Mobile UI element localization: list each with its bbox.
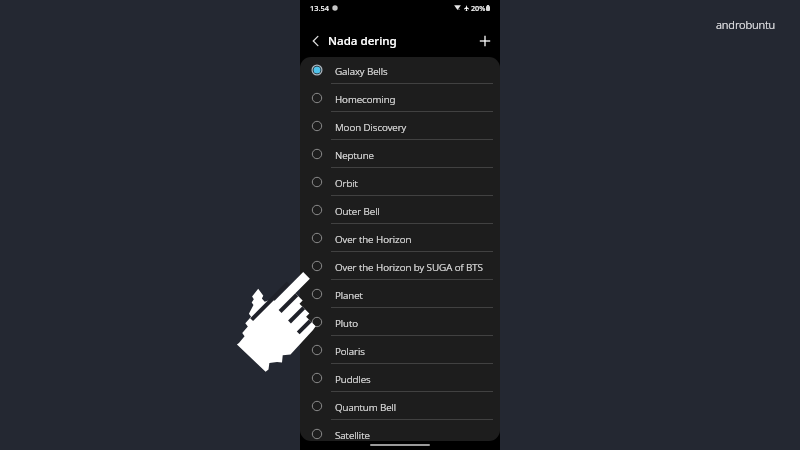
staticText: 20% <box>471 3 486 13</box>
button[interactable]: Galaxy Bells <box>300 57 500 84</box>
button[interactable]: Over the Horizon <box>300 224 500 252</box>
staticText: Polaris <box>335 344 365 357</box>
staticText: Pluto <box>335 316 359 329</box>
staticText: Quantum Bell <box>335 400 397 413</box>
staticText: Homecoming <box>335 92 396 105</box>
button[interactable]: Homecoming <box>300 84 500 112</box>
staticText: Nada dering <box>328 33 397 49</box>
button[interactable]: Back <box>307 33 323 49</box>
staticText: androbuntu <box>716 17 776 32</box>
staticText: Over the Horizon by SUGA of BTS <box>335 260 483 273</box>
staticText: Orbit <box>335 176 358 189</box>
button[interactable]: Outer Bell <box>300 196 500 224</box>
staticText: Satellite <box>335 428 370 441</box>
button[interactable]: Planet <box>300 280 500 308</box>
button[interactable]: Polaris <box>300 336 500 364</box>
staticText: Planet <box>335 288 363 301</box>
staticText: 13.54 <box>310 3 329 13</box>
button[interactable]: Neptune <box>300 140 500 168</box>
staticText: Galaxy Bells <box>335 64 388 77</box>
staticText: Neptune <box>335 148 374 161</box>
button[interactable]: Quantum Bell <box>300 392 500 420</box>
button[interactable]: Pluto <box>300 308 500 336</box>
button[interactable]: Puddles <box>300 364 500 392</box>
button[interactable]: Moon Discovery <box>300 112 500 140</box>
button[interactable]: Add <box>477 33 493 49</box>
staticText: Puddles <box>335 372 371 385</box>
button[interactable]: Satellite <box>300 420 500 441</box>
button[interactable]: Orbit <box>300 168 500 196</box>
staticText: Moon Discovery <box>335 120 407 133</box>
button[interactable]: Over the Horizon by SUGA of BTS <box>300 252 500 280</box>
staticText: Over the Horizon <box>335 232 412 245</box>
staticText: Outer Bell <box>335 204 380 217</box>
